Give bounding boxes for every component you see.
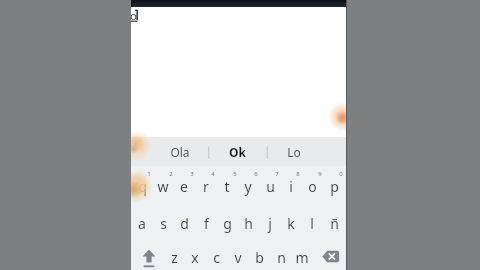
button[interactable]: t [213,175,241,197]
staticText: s [160,214,167,233]
staticText: Ola [170,144,190,160]
staticText: 8 [296,170,300,178]
button[interactable]: g [213,212,241,234]
button[interactable]: y [234,175,262,197]
staticText: e [180,177,188,196]
button[interactable]: b [245,246,273,268]
button[interactable]: ñ [320,212,348,234]
staticText: b [255,248,264,267]
button[interactable]: p [320,175,348,197]
staticText: m [295,248,309,267]
staticText: h [244,214,253,233]
staticText: 9 [318,170,322,178]
staticText: o [130,8,137,24]
button[interactable]: q [128,175,156,197]
staticText: j [268,214,272,233]
button[interactable]: x [181,246,209,268]
staticText: a [138,214,146,233]
staticText: n [277,248,286,267]
staticText: t [224,177,230,196]
staticText: q [138,177,147,196]
staticText: y [244,177,252,196]
staticText: i [289,177,293,196]
staticText: ñ [330,214,339,233]
button[interactable]: a [128,212,156,234]
staticText: 4 [211,170,215,178]
staticText: l [310,214,314,233]
button[interactable]: o [298,175,326,197]
button[interactable]: u [256,175,284,197]
staticText: w [157,177,169,196]
button[interactable]: z [160,246,188,268]
button[interactable]: h [234,212,262,234]
button[interactable]: m [288,246,316,268]
staticText: 6 [254,170,258,178]
staticText: 5 [233,170,237,178]
staticText: 7 [275,170,279,178]
staticText: g [223,214,232,233]
button[interactable] [319,247,343,267]
staticText: 0 [339,170,343,178]
button[interactable]: Lo [280,141,308,163]
button[interactable]: v [224,246,252,268]
staticText: 1 [147,170,151,178]
staticText: r [203,177,209,196]
button[interactable]: j [256,212,284,234]
button[interactable]: n [267,246,295,268]
staticText: x [191,248,199,267]
button[interactable]: e [170,175,198,197]
button[interactable] [138,246,160,270]
staticText: Ok [229,144,246,160]
button[interactable]: w [149,175,177,197]
button[interactable]: r [192,175,220,197]
staticText: k [287,214,295,233]
staticText: o [308,177,317,196]
button[interactable]: d [170,212,198,234]
button[interactable]: Ola [166,141,194,163]
staticText: d [180,214,189,233]
staticText: p [330,177,339,196]
staticText: z [171,248,178,267]
staticText: 2 [169,170,173,178]
staticText: c [213,248,220,267]
staticText: u [266,177,275,196]
staticText: Lo [287,144,301,160]
button[interactable]: s [149,212,177,234]
staticText: 3 [190,170,194,178]
staticText: f [204,214,209,233]
button[interactable]: i [277,175,305,197]
button[interactable]: f [192,212,220,234]
button[interactable]: l [298,212,326,234]
staticText: v [234,248,242,267]
button[interactable]: c [202,246,230,268]
button[interactable]: k [277,212,305,234]
button[interactable]: Ok [223,141,251,163]
